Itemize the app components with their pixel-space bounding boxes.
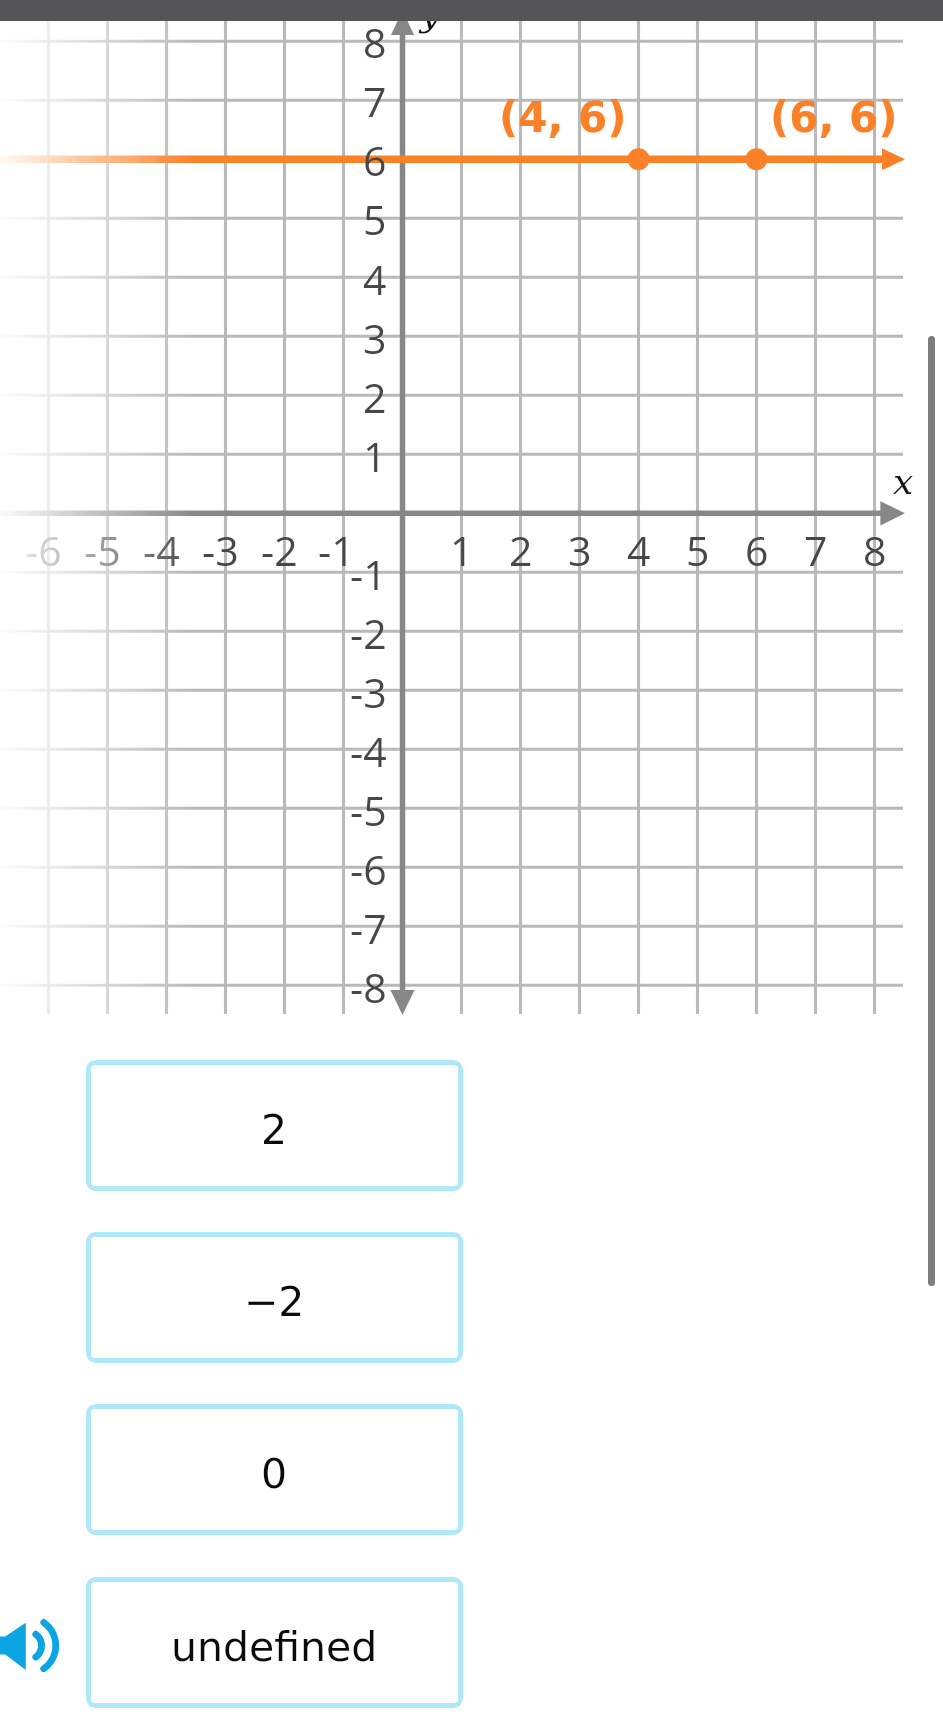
staticText: -6 — [350, 841, 387, 897]
staticText: y — [420, 0, 441, 35]
staticText: 0 — [261, 1450, 288, 1498]
staticText: 1 — [363, 428, 387, 484]
staticText: -4 — [143, 522, 180, 578]
staticText: 1 — [450, 522, 474, 578]
staticText: 5 — [686, 522, 710, 578]
button[interactable]: undefined — [86, 1577, 463, 1708]
staticText: -4 — [350, 723, 387, 779]
staticText: undefined — [171, 1623, 378, 1671]
staticText: 2 — [509, 522, 533, 578]
staticText: 2 — [363, 369, 387, 425]
staticText: 4 — [363, 251, 387, 307]
staticText: 7 — [363, 73, 387, 129]
staticText: -5 — [84, 522, 121, 578]
staticText: 5 — [363, 191, 387, 247]
staticText: -3 — [202, 522, 239, 578]
staticText: 3 — [363, 310, 387, 366]
button[interactable]: Play audio — [0, 1615, 70, 1677]
staticText: -2 — [350, 605, 387, 661]
staticText: -2 — [261, 522, 298, 578]
staticText: -5 — [350, 782, 387, 838]
staticText: (4, 6) — [499, 93, 627, 142]
staticText: 7 — [804, 522, 828, 578]
staticText: 3 — [568, 522, 592, 578]
staticText: 4 — [627, 522, 651, 578]
staticText: -1 — [350, 546, 387, 602]
button[interactable]: 0 — [86, 1404, 463, 1535]
staticText: -8 — [350, 959, 387, 1015]
staticText: x — [893, 461, 914, 503]
staticText: 6 — [745, 522, 769, 578]
staticText: 6 — [363, 132, 387, 188]
staticText: 8 — [863, 522, 887, 578]
button[interactable]: 2 — [86, 1060, 463, 1191]
staticText: -1 — [318, 522, 355, 578]
staticText: 8 — [363, 14, 387, 70]
staticText: -7 — [350, 900, 387, 956]
staticText: −2 — [244, 1278, 305, 1326]
button[interactable]: −2 — [86, 1232, 463, 1363]
staticText: (6, 6) — [770, 93, 898, 142]
staticText: 2 — [261, 1106, 288, 1154]
staticText: -3 — [350, 664, 387, 720]
staticText: -6 — [25, 522, 62, 578]
